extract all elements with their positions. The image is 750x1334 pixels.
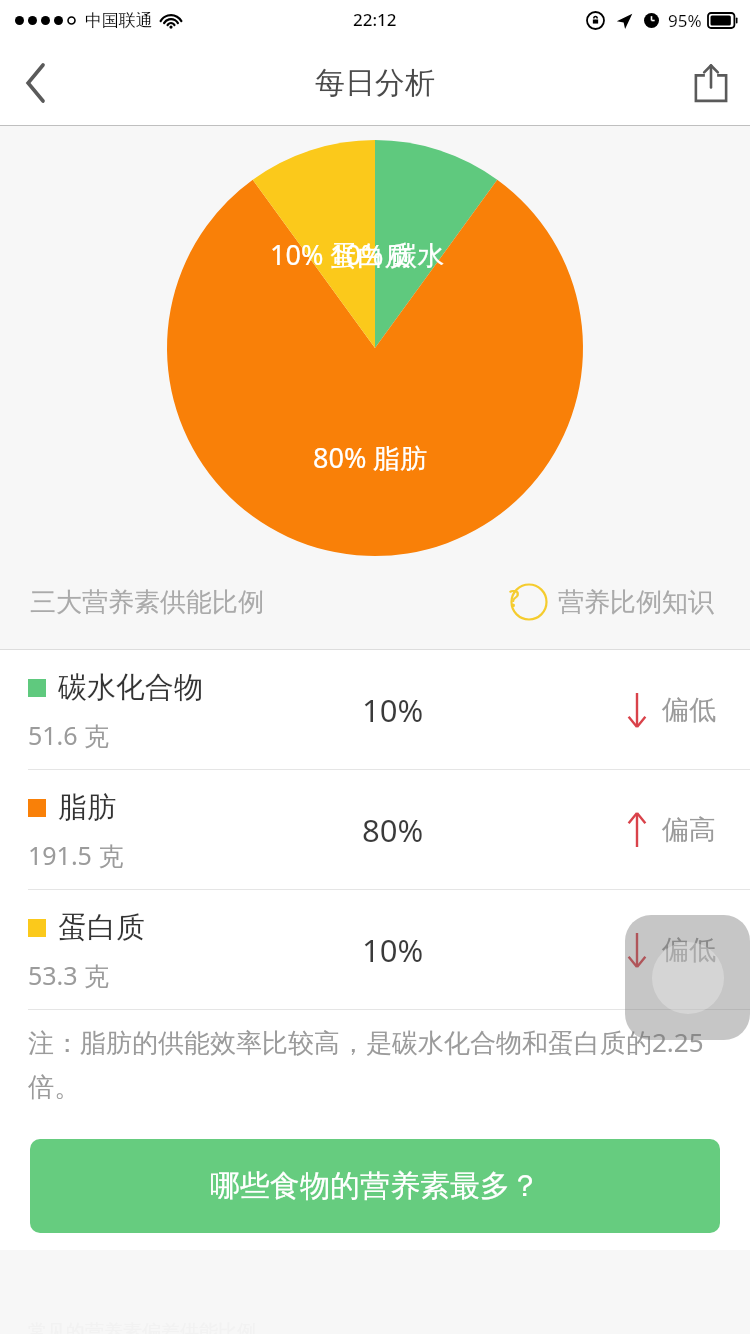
staticText: 偏低 — [662, 693, 716, 727]
staticText: 偏低 — [662, 933, 716, 967]
staticText: 脂肪 — [58, 789, 116, 826]
staticText: 碳水化合物 — [58, 669, 203, 706]
staticText: 22:12 — [353, 8, 397, 31]
staticText: 53.3 克 — [28, 958, 110, 992]
staticText: 中国联通 — [85, 10, 153, 31]
button[interactable]: Share — [672, 40, 750, 126]
staticText: 10% — [362, 689, 424, 731]
staticText: 每日分析 — [315, 64, 435, 102]
staticText: 蛋白质 — [58, 909, 145, 946]
button[interactable]: 营养比例知识 — [510, 575, 714, 629]
staticText: 注：脂肪的供能效率比较高，是碳水化合物和蛋白质的2.25倍。 — [28, 1024, 720, 1104]
staticText: 51.6 克 — [28, 718, 110, 752]
staticText: 80% — [362, 809, 424, 851]
staticText: 10% 碳水 — [330, 236, 445, 273]
staticText: 哪些食物的营养素最多？ — [210, 1167, 540, 1205]
button[interactable]: 哪些食物的营养素最多？ — [30, 1139, 720, 1233]
staticText: 95% — [668, 9, 702, 32]
staticText: 偏高 — [662, 813, 716, 847]
button[interactable]: 碳水化合物 — [0, 650, 750, 770]
staticText: 三大营养素供能比例 — [30, 586, 264, 619]
button[interactable]: 脂肪 — [0, 770, 750, 890]
staticText: 10% 蛋白质 — [270, 236, 412, 273]
staticText: 10% — [362, 929, 424, 971]
button[interactable]: AssistiveTouch — [625, 915, 750, 1040]
staticText: 营养比例知识 — [558, 586, 714, 619]
staticText: 191.5 克 — [28, 838, 124, 872]
button[interactable]: Back — [0, 40, 72, 126]
staticText: ? — [509, 581, 520, 614]
button[interactable]: 蛋白质 — [0, 890, 750, 1010]
staticText: 80% 脂肪 — [313, 439, 428, 476]
